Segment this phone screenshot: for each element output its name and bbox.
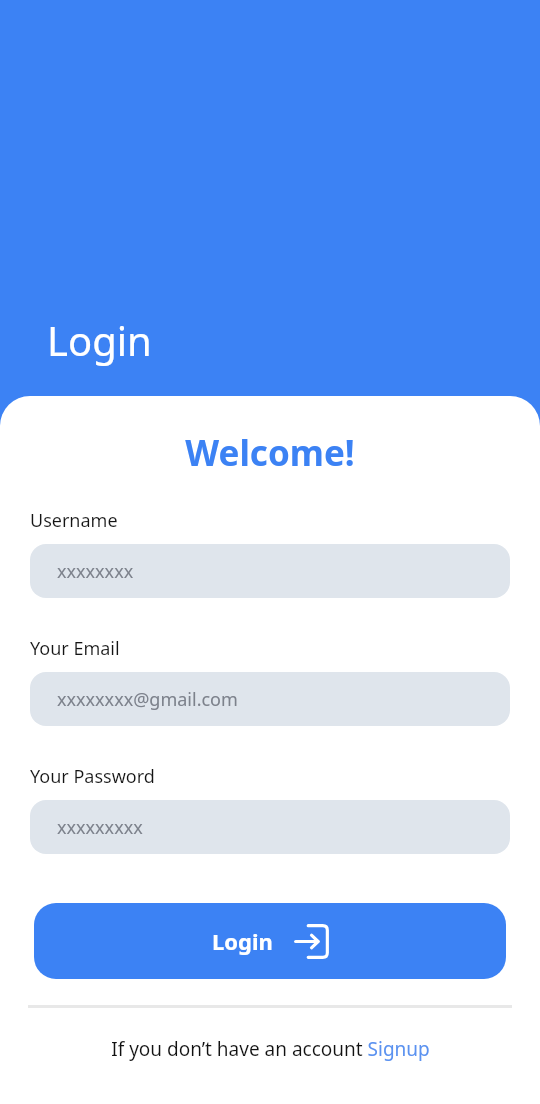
staticText: Login: [47, 313, 152, 367]
staticText: Your Password: [30, 764, 155, 789]
button[interactable]: xxxxxxxx: [30, 544, 510, 598]
staticText: xxxxxxxx: [57, 559, 134, 584]
staticText: Your Email: [30, 636, 120, 661]
button[interactable]: If you don’t have an account Signup: [0, 1025, 540, 1073]
button[interactable]: Login: [34, 903, 506, 979]
staticText: xxxxxxxx@gmail.com: [57, 687, 238, 712]
staticText: Welcome!: [0, 429, 540, 477]
staticText: xxxxxxxxx: [57, 815, 143, 840]
button[interactable]: xxxxxxxxx: [30, 800, 510, 854]
staticText: If you don’t have an account Signup: [111, 1036, 430, 1062]
staticText: Username: [30, 508, 118, 533]
other: Login: [295, 925, 328, 958]
staticText: Login: [212, 926, 273, 956]
button[interactable]: xxxxxxxx@gmail.com: [30, 672, 510, 726]
